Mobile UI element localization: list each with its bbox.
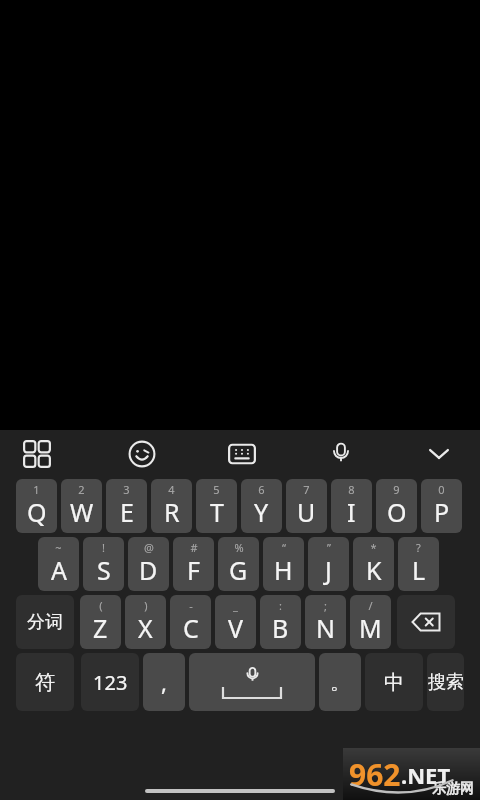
- button[interactable]: Keyboard layout: [222, 434, 262, 474]
- button[interactable]: Space: [189, 653, 315, 711]
- staticText: M: [359, 611, 382, 645]
- staticText: 5: [213, 482, 220, 497]
- button[interactable]: *: [353, 537, 394, 591]
- button[interactable]: _: [215, 595, 256, 649]
- staticText: 搜索: [428, 671, 464, 694]
- button[interactable]: 。: [319, 653, 361, 711]
- staticText: :: [279, 598, 282, 613]
- staticText: Y: [254, 495, 269, 529]
- button[interactable]: Hide keyboard: [419, 434, 459, 474]
- staticText: 分词: [27, 611, 63, 634]
- staticText: J: [325, 553, 332, 587]
- button[interactable]: ~: [38, 537, 79, 591]
- button[interactable]: ?: [398, 537, 439, 591]
- button[interactable]: Backspace: [397, 595, 455, 649]
- staticText: _: [233, 598, 238, 613]
- button[interactable]: -: [170, 595, 211, 649]
- staticText: *: [370, 540, 377, 555]
- staticText: B: [272, 611, 289, 645]
- button[interactable]: #: [173, 537, 214, 591]
- button[interactable]: 分词: [16, 595, 74, 649]
- button[interactable]: 123: [81, 653, 139, 711]
- staticText: !: [102, 540, 105, 555]
- staticText: N: [316, 611, 336, 645]
- button[interactable]: !: [83, 537, 124, 591]
- button[interactable]: :: [260, 595, 301, 649]
- staticText: V: [228, 611, 244, 645]
- staticText: Z: [93, 611, 108, 645]
- button[interactable]: 4: [151, 479, 192, 533]
- button[interactable]: ): [125, 595, 166, 649]
- staticText: S: [97, 553, 111, 587]
- staticText: 2: [78, 482, 85, 497]
- staticText: ;: [324, 598, 327, 613]
- staticText: ): [144, 598, 148, 613]
- staticText: 962: [349, 754, 401, 795]
- staticText: ~: [55, 540, 62, 555]
- button[interactable]: 中: [365, 653, 423, 711]
- staticText: Q: [27, 495, 47, 529]
- staticText: R: [164, 495, 180, 529]
- staticText: “: [282, 540, 286, 555]
- button[interactable]: /: [350, 595, 391, 649]
- button[interactable]: 7: [286, 479, 327, 533]
- staticText: @: [144, 540, 154, 555]
- staticText: W: [70, 495, 94, 529]
- button[interactable]: (: [80, 595, 121, 649]
- staticText: D: [139, 553, 158, 587]
- staticText: ”: [327, 540, 331, 555]
- staticText: O: [387, 495, 407, 529]
- staticText: 7: [303, 482, 310, 497]
- button[interactable]: Emoji: [122, 434, 162, 474]
- button[interactable]: 3: [106, 479, 147, 533]
- button[interactable]: Voice input: [321, 434, 361, 474]
- staticText: (: [99, 598, 103, 613]
- staticText: 6: [258, 482, 265, 497]
- button[interactable]: @: [128, 537, 169, 591]
- button[interactable]: 搜索: [427, 653, 464, 711]
- button[interactable]: 0: [421, 479, 462, 533]
- staticText: %: [234, 540, 244, 555]
- staticText: -: [189, 598, 193, 613]
- button[interactable]: 符: [16, 653, 74, 711]
- button[interactable]: ,: [143, 653, 185, 711]
- staticText: 3: [123, 482, 130, 497]
- staticText: ,: [161, 667, 167, 697]
- staticText: G: [229, 553, 248, 587]
- staticText: X: [138, 611, 153, 645]
- button[interactable]: 5: [196, 479, 237, 533]
- staticText: 符: [35, 670, 55, 695]
- staticText: L: [412, 553, 426, 587]
- button[interactable]: %: [218, 537, 259, 591]
- staticText: K: [366, 553, 382, 587]
- staticText: 1: [33, 482, 40, 497]
- staticText: I: [347, 495, 356, 529]
- staticText: 0: [438, 482, 445, 497]
- button[interactable]: 6: [241, 479, 282, 533]
- button[interactable]: ;: [305, 595, 346, 649]
- staticText: C: [183, 611, 199, 645]
- staticText: P: [434, 495, 450, 529]
- staticText: 。: [330, 670, 350, 695]
- staticText: 乐游网: [432, 780, 474, 798]
- staticText: 4: [168, 482, 175, 497]
- staticText: ?: [416, 540, 421, 555]
- button[interactable]: Menu: [17, 434, 57, 474]
- staticText: #: [190, 540, 198, 555]
- staticText: A: [51, 553, 67, 587]
- button[interactable]: 1: [16, 479, 57, 533]
- staticText: 中: [384, 670, 404, 695]
- staticText: T: [210, 495, 224, 529]
- button[interactable]: 8: [331, 479, 372, 533]
- staticText: 8: [348, 482, 355, 497]
- staticText: F: [187, 553, 200, 587]
- staticText: E: [120, 495, 134, 529]
- button[interactable]: 9: [376, 479, 417, 533]
- staticText: /: [368, 598, 373, 613]
- staticText: 9: [393, 482, 400, 497]
- staticText: U: [297, 495, 316, 529]
- button[interactable]: “: [263, 537, 304, 591]
- button[interactable]: 2: [61, 479, 102, 533]
- button[interactable]: ”: [308, 537, 349, 591]
- staticText: 123: [93, 669, 128, 696]
